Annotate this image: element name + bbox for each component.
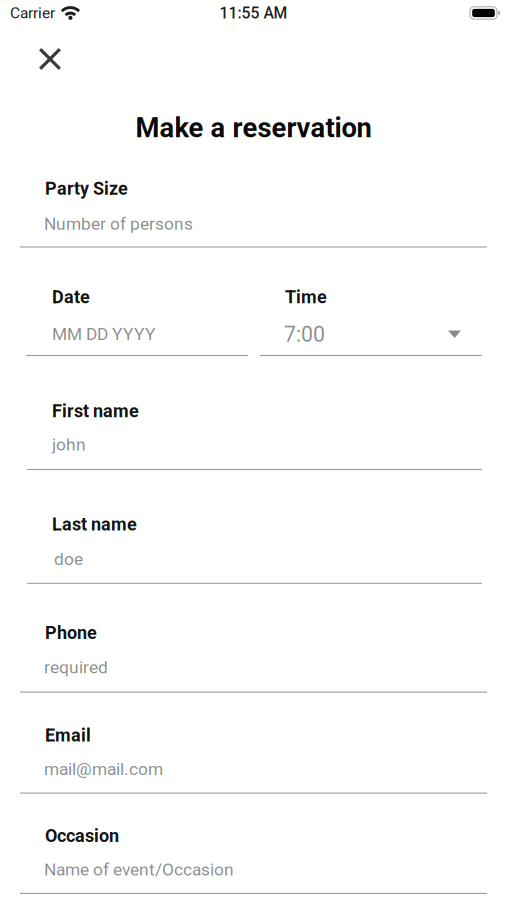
staticText: Email [45, 725, 91, 746]
staticText: Date [52, 286, 90, 308]
button[interactable]: Party Size [0, 178, 507, 247]
staticText: Number of persons [44, 214, 193, 234]
button[interactable]: Close [29, 40, 71, 78]
button[interactable]: Phone [0, 622, 507, 693]
staticText: 11:55 AM [219, 4, 287, 22]
button[interactable]: Occasion [0, 825, 507, 894]
staticText: Occasion [45, 825, 119, 846]
button[interactable]: Last name [0, 514, 507, 584]
staticText: mail@mail.com [44, 759, 163, 779]
staticText: First name [52, 400, 139, 422]
staticText: doe [54, 549, 83, 569]
staticText: Party Size [45, 178, 128, 199]
staticText: Make a reservation [135, 112, 371, 144]
staticText: 7:00 [284, 322, 325, 347]
staticText: MM DD YYYY [52, 324, 155, 344]
staticText: john [52, 434, 86, 455]
staticText: Time [285, 286, 327, 308]
button[interactable]: Time [260, 286, 507, 354]
staticText: Name of event/Occasion [44, 859, 234, 880]
staticText: Last name [52, 514, 137, 535]
staticText: Carrier [10, 4, 55, 22]
staticText: Phone [45, 622, 97, 643]
staticText: required [44, 657, 108, 677]
button[interactable]: Email [0, 725, 507, 794]
button[interactable]: Date [0, 286, 260, 356]
button[interactable]: First name [0, 400, 507, 470]
